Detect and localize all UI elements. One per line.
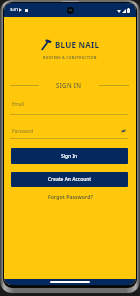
staticText: Password <box>12 128 34 134</box>
staticText: 3:31 <box>10 7 19 13</box>
button[interactable]: Toggle password visibility <box>119 127 127 134</box>
staticText: Sign In <box>61 153 78 160</box>
staticText: ROOFING & CONSTRUCTION <box>43 55 97 60</box>
button[interactable]: Forgot Password? <box>48 193 93 200</box>
staticText: Create An Account <box>48 176 92 183</box>
staticText: BLUE NAIL <box>55 39 100 50</box>
button[interactable]: Create An Account <box>11 172 128 187</box>
staticText: Email <box>12 101 25 107</box>
button[interactable]: Sign In <box>11 148 128 164</box>
staticText: SIGN IN <box>56 81 82 89</box>
